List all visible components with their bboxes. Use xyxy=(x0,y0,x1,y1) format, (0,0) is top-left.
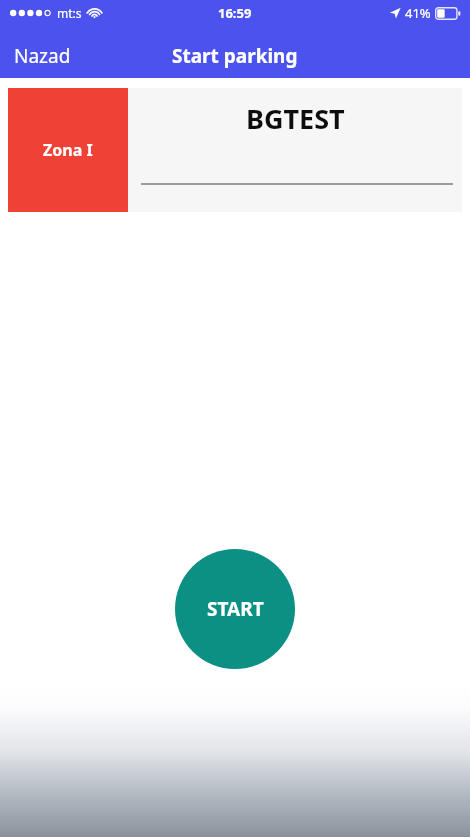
staticText: mt:s xyxy=(57,5,82,21)
staticText: Zona I xyxy=(43,139,93,161)
staticText: 16:59 xyxy=(218,4,252,22)
button[interactable]: BGTEST xyxy=(128,88,462,212)
button[interactable]: Nazad xyxy=(9,39,76,73)
staticText: BGTEST xyxy=(246,100,345,137)
staticText: START xyxy=(207,596,264,622)
staticText: 41% xyxy=(405,4,431,22)
button[interactable]: Zona I xyxy=(8,88,128,212)
staticText: Nazad xyxy=(14,43,71,69)
button[interactable]: START xyxy=(175,549,295,669)
staticText: Start parking xyxy=(172,43,298,69)
